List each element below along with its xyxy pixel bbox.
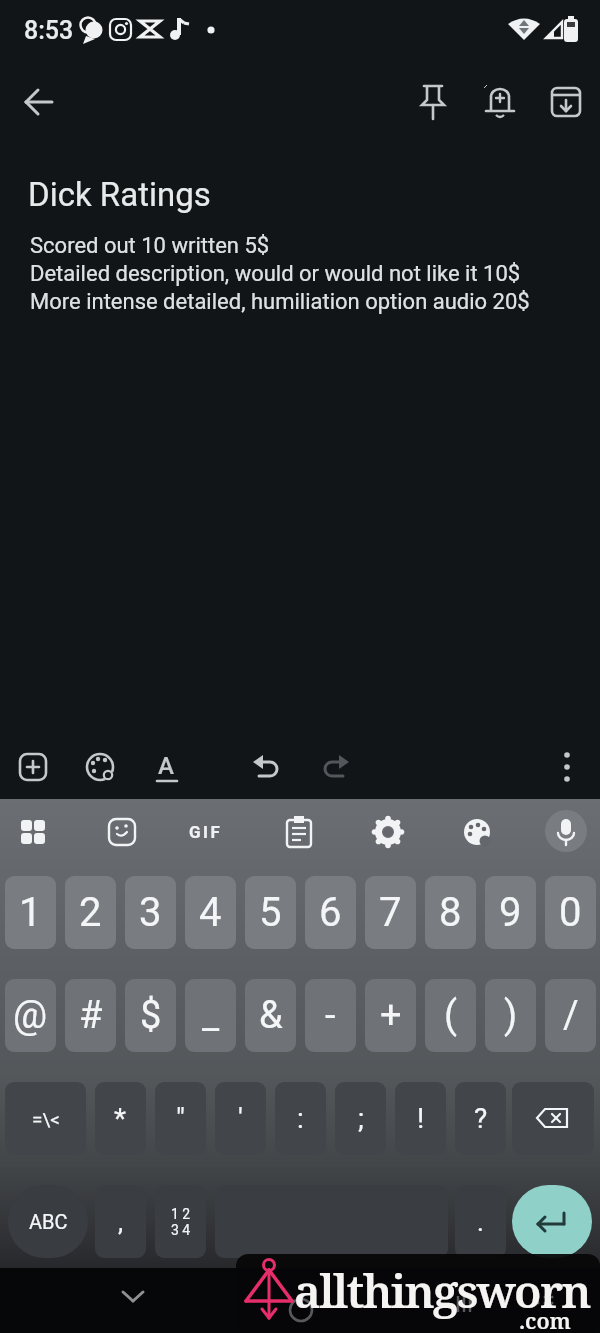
button[interactable] (543, 806, 591, 854)
button[interactable]: 2 (65, 876, 116, 949)
button[interactable] (277, 808, 321, 852)
staticText: + (380, 993, 402, 1038)
button[interactable]: : (275, 1082, 326, 1155)
button[interactable]: 1 (5, 876, 56, 949)
staticText: 2 (79, 889, 102, 936)
button[interactable]: 3 (125, 876, 176, 949)
button[interactable]: 7 (365, 876, 416, 949)
staticText: Scored out 10 written 5$ Detailed descri… (30, 233, 530, 315)
button[interactable] (145, 745, 189, 789)
staticText: ; (358, 1102, 364, 1135)
staticText: _ (202, 993, 220, 1038)
button[interactable]: - (305, 979, 356, 1052)
button[interactable]: " (155, 1082, 206, 1155)
button[interactable] (11, 745, 55, 789)
button[interactable]: & (245, 979, 296, 1052)
button[interactable] (544, 80, 588, 124)
staticText: .com (519, 1305, 571, 1333)
staticText: @ (13, 993, 48, 1038)
button[interactable] (16, 80, 60, 124)
button[interactable]: # (65, 979, 116, 1052)
button[interactable]: ' (215, 1082, 266, 1155)
button[interactable] (455, 808, 499, 852)
staticText: 1 (19, 889, 42, 936)
button[interactable]: ( (425, 979, 476, 1052)
staticText: " (176, 1102, 185, 1135)
button[interactable] (215, 1185, 448, 1258)
staticText: 9 (499, 889, 522, 936)
staticText: ABC (29, 1210, 68, 1233)
staticText: 5 (259, 889, 282, 936)
button[interactable] (314, 745, 358, 789)
button[interactable] (545, 745, 589, 789)
staticText: 0 (559, 889, 582, 936)
staticText: ' (238, 1102, 243, 1135)
staticText: ( (444, 993, 458, 1038)
staticText: GIF (189, 822, 223, 842)
staticText: 8:53 (24, 16, 74, 45)
staticText: , (118, 1207, 124, 1237)
staticText: / (563, 993, 579, 1038)
staticText: 3 4 (171, 1222, 191, 1238)
staticText: 1 2 (171, 1206, 191, 1222)
button[interactable]: ABC (8, 1185, 88, 1258)
button[interactable] (244, 745, 288, 789)
button[interactable]: / (545, 979, 596, 1052)
staticText: & (259, 993, 283, 1038)
button[interactable]: 8 (425, 876, 476, 949)
button[interactable]: ; (335, 1082, 386, 1155)
button[interactable]: 0 (545, 876, 596, 949)
staticText: . (477, 1207, 484, 1237)
button[interactable]: , (95, 1185, 146, 1258)
button[interactable] (411, 80, 455, 124)
button[interactable]: 9 (485, 876, 536, 949)
button[interactable] (512, 1185, 592, 1258)
button[interactable]: =\< (5, 1082, 86, 1155)
staticText: # (79, 993, 103, 1038)
staticText: 7 (379, 889, 402, 936)
button[interactable]: 5 (245, 876, 296, 949)
button[interactable] (188, 808, 232, 852)
staticText: A (158, 752, 174, 780)
button[interactable] (78, 745, 122, 789)
button[interactable]: _ (185, 979, 236, 1052)
staticText: * (114, 1102, 127, 1135)
staticText: 6 (319, 889, 342, 936)
button[interactable]: + (365, 979, 416, 1052)
button[interactable] (366, 808, 410, 852)
button[interactable]: @ (5, 979, 56, 1052)
staticText: ) (504, 993, 518, 1038)
button[interactable]: ! (395, 1082, 446, 1155)
staticText: 4 (199, 889, 222, 936)
staticText: 8 (439, 889, 462, 936)
button[interactable]: ) (485, 979, 536, 1052)
button[interactable]: 6 (305, 876, 356, 949)
button[interactable]: * (95, 1082, 146, 1155)
staticText: Dick Ratings (28, 175, 211, 214)
staticText: =\< (32, 1108, 60, 1130)
staticText: $ (140, 993, 162, 1038)
staticText: ! (417, 1102, 425, 1135)
staticText: - (325, 993, 336, 1038)
staticText: allthingsworn (294, 1259, 590, 1322)
button[interactable]: ? (455, 1082, 506, 1155)
staticText: ? (474, 1102, 488, 1135)
button[interactable]: 4 (185, 876, 236, 949)
button[interactable]: 1 2 (155, 1185, 206, 1258)
button[interactable] (10, 808, 54, 852)
button[interactable] (100, 808, 144, 852)
button[interactable]: . (455, 1185, 506, 1258)
button[interactable] (111, 1274, 155, 1318)
button[interactable] (512, 1082, 594, 1155)
staticText: : (297, 1102, 304, 1135)
button[interactable]: $ (125, 979, 176, 1052)
staticText: 3 (139, 889, 162, 936)
button[interactable] (478, 80, 522, 124)
